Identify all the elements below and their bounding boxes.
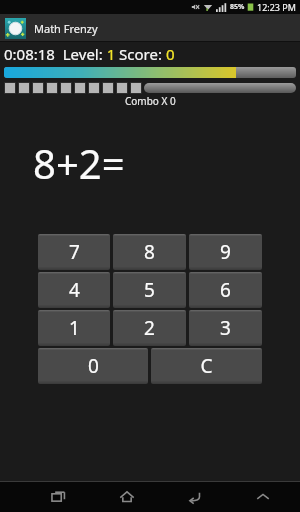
button[interactable]: 9 <box>189 234 262 270</box>
button[interactable]: 2 <box>113 310 186 346</box>
staticText: 9 <box>220 239 231 265</box>
staticText: 7 <box>69 239 80 265</box>
button[interactable]: 0 <box>38 348 148 384</box>
button[interactable]: Recent apps <box>39 482 79 512</box>
button[interactable]: 1 <box>38 310 110 346</box>
staticText: Math Frenzy <box>34 21 98 36</box>
button[interactable]: 4 <box>38 272 110 308</box>
staticText: 12:23 PM <box>257 1 296 13</box>
staticText: 5 <box>144 277 155 303</box>
button[interactable]: 3 <box>189 310 262 346</box>
button[interactable]: 6 <box>189 272 262 308</box>
button[interactable]: Hide navigation <box>243 482 283 512</box>
staticText: 85% <box>230 2 245 12</box>
staticText: 8+2= <box>33 136 125 190</box>
staticText: 1 <box>69 315 80 341</box>
button[interactable]: 7 <box>38 234 110 270</box>
staticText: 3 <box>220 315 231 341</box>
button[interactable]: C <box>151 348 262 384</box>
staticText: 0:08:18 Level: 1 Score: 0 <box>4 44 175 64</box>
button[interactable]: Home <box>107 482 147 512</box>
staticText: 0 <box>88 353 99 379</box>
button[interactable]: Back <box>175 482 215 512</box>
staticText: 8 <box>144 239 155 265</box>
staticText: 6 <box>220 277 231 303</box>
button[interactable]: 8 <box>113 234 186 270</box>
staticText: C <box>200 353 213 379</box>
staticText: 2 <box>144 315 155 341</box>
staticText: Combo X 0 <box>125 94 176 108</box>
staticText: 4 <box>69 277 80 303</box>
button[interactable]: 5 <box>113 272 186 308</box>
